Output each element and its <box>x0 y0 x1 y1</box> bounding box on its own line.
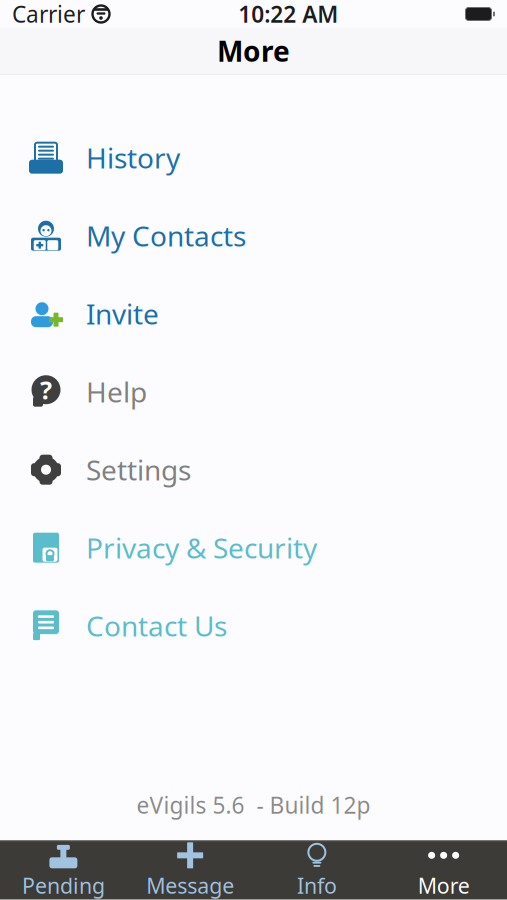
staticText: More <box>217 32 290 70</box>
staticText: More <box>418 871 470 900</box>
staticText: eVigils 5.6 - Build 12p <box>136 790 370 820</box>
button[interactable]: Invite <box>0 275 507 353</box>
button[interactable]: Contact Us <box>0 587 507 665</box>
staticText: My Contacts <box>86 217 246 254</box>
button[interactable]: Settings <box>0 431 507 509</box>
staticText: Contact Us <box>86 607 227 644</box>
button[interactable]: Info <box>253 841 380 899</box>
staticText: Info <box>297 871 337 900</box>
staticText: Privacy & Security <box>86 529 317 566</box>
button[interactable]: Message <box>127 841 254 899</box>
staticText: Message <box>146 871 234 900</box>
staticText: 10:22 AM <box>238 0 338 29</box>
staticText: Pending <box>22 871 105 900</box>
button[interactable]: Privacy & Security <box>0 509 507 587</box>
staticText: Settings <box>86 451 191 488</box>
button[interactable]: More <box>380 841 507 899</box>
staticText: Carrier <box>12 0 85 29</box>
button[interactable]: ? <box>0 353 507 431</box>
staticText: History <box>86 139 180 176</box>
staticText: Invite <box>86 295 159 332</box>
button[interactable]: History <box>0 119 507 197</box>
button[interactable]: My Contacts <box>0 197 507 275</box>
staticText: Help <box>86 373 147 410</box>
button[interactable]: Pending <box>0 841 127 899</box>
staticText: ? <box>40 373 52 406</box>
